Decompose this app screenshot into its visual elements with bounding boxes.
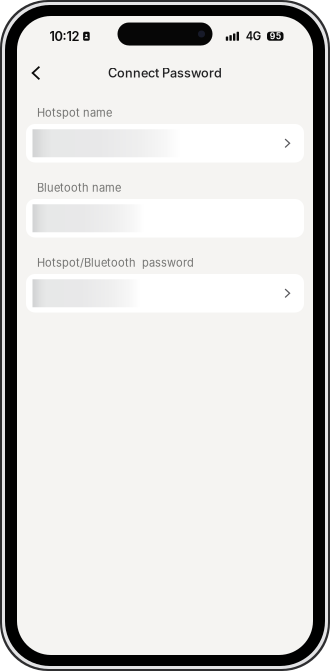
staticText: Hotspot name: [37, 106, 112, 119]
staticText: 95: [270, 31, 281, 41]
button[interactable]: Back: [24, 61, 48, 85]
button[interactable]: [26, 199, 304, 237]
staticText: 10:12: [49, 28, 79, 44]
button[interactable]: [26, 124, 304, 162]
staticText: Connect Password: [108, 65, 222, 81]
button[interactable]: [26, 274, 304, 312]
staticText: 4G: [246, 29, 261, 43]
staticText: Bluetooth name: [37, 181, 121, 194]
staticText: Hotspot/Bluetooth password: [37, 256, 194, 269]
